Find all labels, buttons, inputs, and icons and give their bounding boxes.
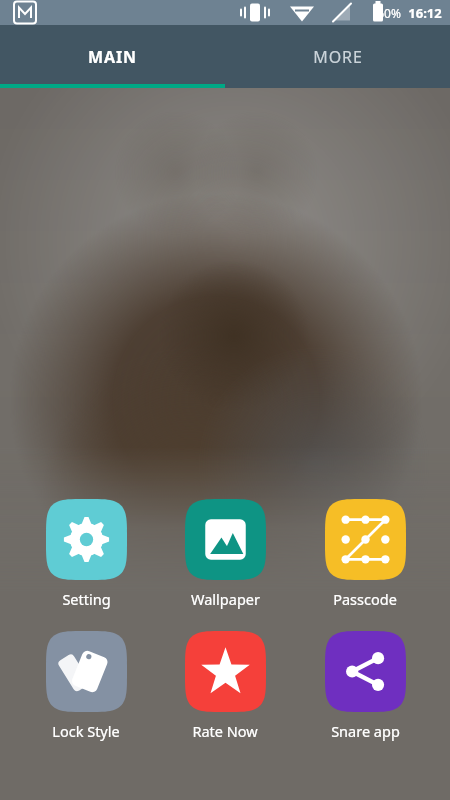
staticText: MORE [313,46,363,68]
button[interactable]: MORE [225,25,450,88]
button[interactable]: Snare app [303,631,427,741]
staticText: 16:12 [408,4,442,22]
staticText: Wallpaper [191,589,260,609]
staticText: MAIN [88,46,137,68]
button[interactable]: Setting [24,499,148,609]
button[interactable]: Wallpaper [163,499,287,609]
staticText: Rate Now [192,721,258,741]
button[interactable]: MAIN [0,25,225,88]
button[interactable]: Passcode [303,499,427,609]
button[interactable]: Lock Style [24,631,148,741]
staticText: 60% [377,5,401,21]
staticText: Passcode [333,589,397,609]
button[interactable]: Rate Now [163,631,287,741]
staticText: Snare app [331,721,400,741]
staticText: Setting [62,589,111,609]
staticText: Lock Style [52,721,120,741]
